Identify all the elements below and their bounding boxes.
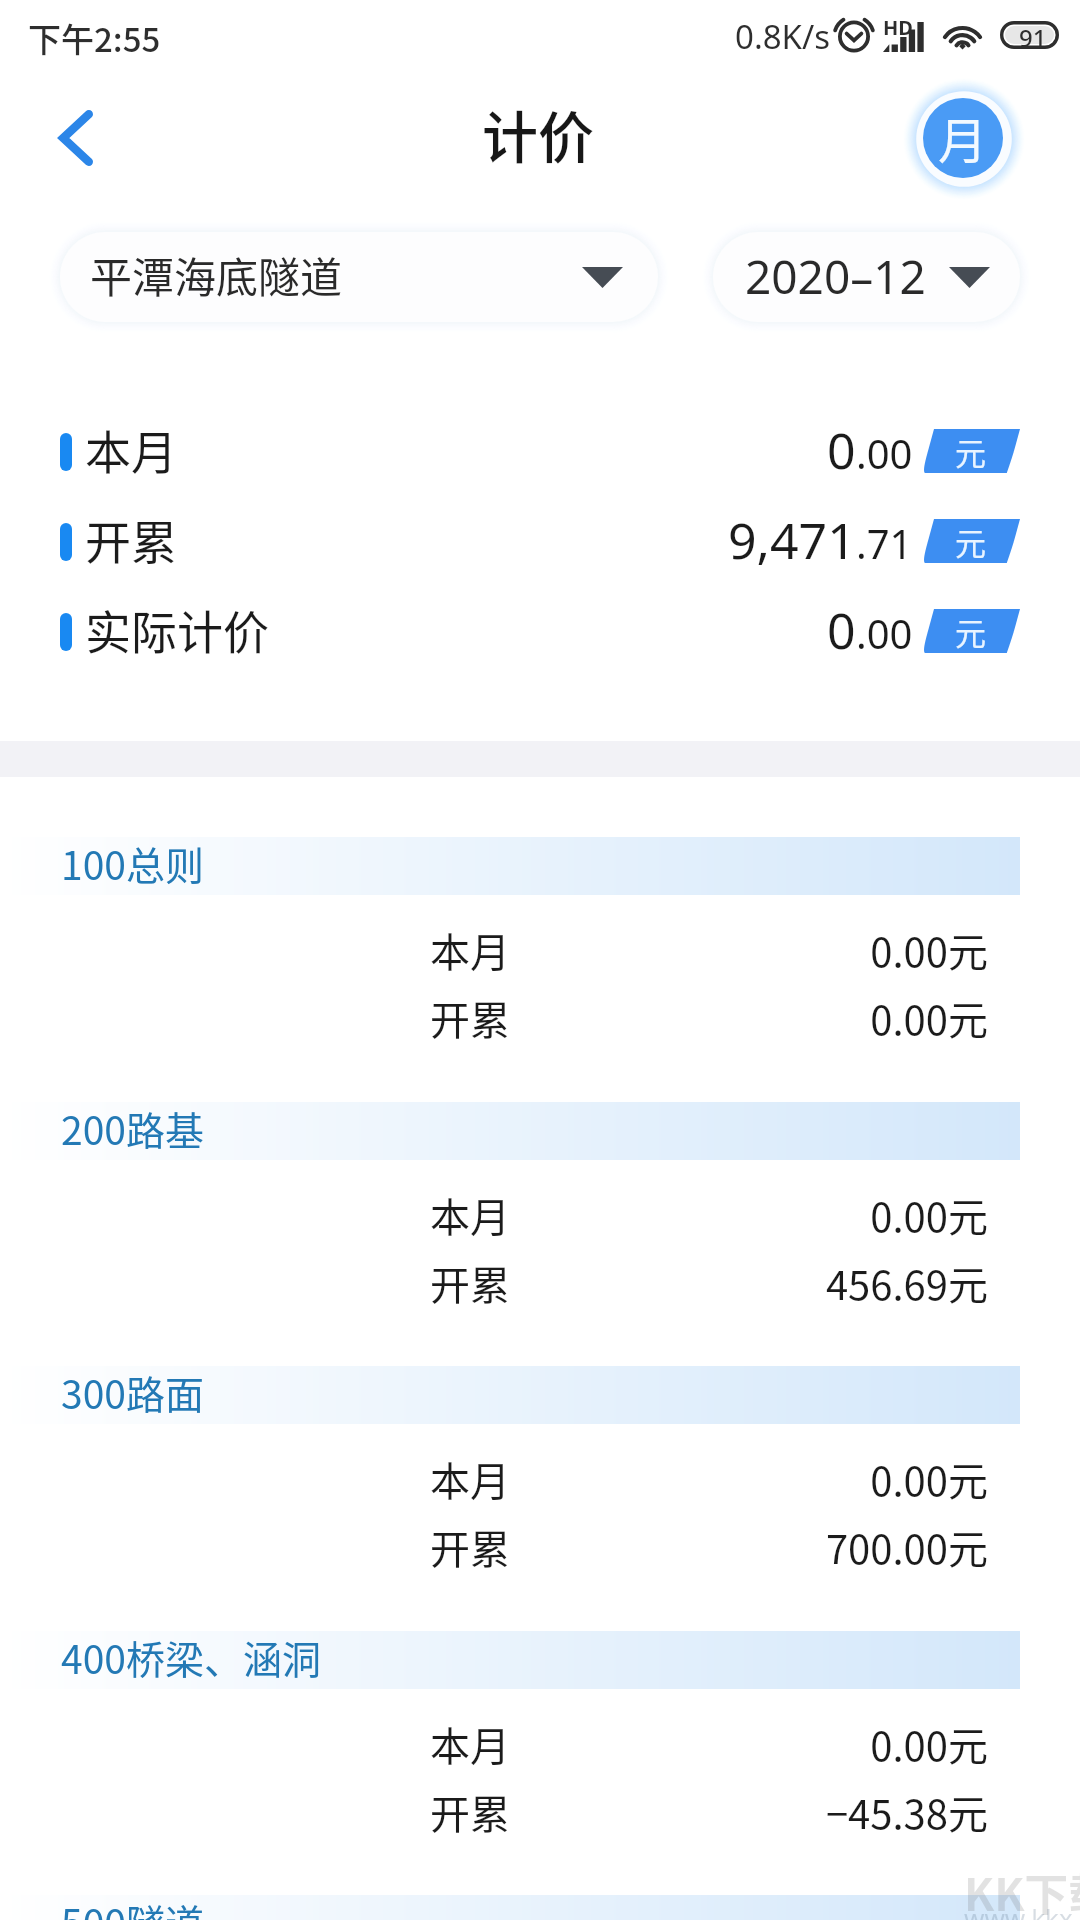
staticText: 元 [955,429,986,473]
button[interactable]: 开累 [0,509,1080,575]
button[interactable]: 平潭海底隧道 [60,232,658,322]
staticText: 400桥梁、涵洞 [61,1629,321,1685]
staticText: 0 [827,416,856,482]
button[interactable]: 本月 [0,921,1080,975]
button[interactable]: 本月 [0,1715,1080,1769]
button[interactable]: Back [38,100,114,176]
button[interactable]: 开累 [0,1783,1080,1837]
button[interactable]: 开累 [0,989,1080,1043]
staticText: 0.00元 [600,1450,988,1504]
staticText: 本月 [430,1450,510,1504]
staticText: 本月 [85,416,177,482]
staticText: HD [883,14,913,41]
button[interactable]: 500隧道 [0,1895,1020,1920]
staticText: 0.00元 [600,921,988,975]
staticText: 开累 [430,1783,510,1837]
staticText: 0 [827,596,856,662]
staticText: www.kkx.net [964,1900,1080,1920]
staticText: 0.8K/s [735,14,831,59]
staticText: 月 [938,102,988,173]
staticText: 300路面 [61,1364,204,1420]
button[interactable]: 200路基 [0,1102,1020,1160]
staticText: 下午2:55 [28,14,161,62]
staticText: 实际计价 [85,596,269,662]
button[interactable]: 开累 [0,1254,1080,1308]
staticText: .00 [856,606,913,660]
staticText: 2020–12 [745,245,926,308]
staticText: .71 [856,516,913,570]
staticText: 元 [955,609,986,653]
staticText: 本月 [430,921,510,975]
button[interactable]: 400桥梁、涵洞 [0,1631,1020,1689]
staticText: 计价 [482,93,594,174]
button[interactable]: 2020–12 [713,232,1020,322]
button[interactable]: 开累 [0,1518,1080,1572]
staticText: 本月 [430,1186,510,1240]
staticText: 0.00元 [600,989,988,1043]
button[interactable]: 100总则 [0,837,1020,895]
staticText: .00 [856,426,913,480]
staticText: 100总则 [61,835,204,891]
staticText: 元 [955,519,986,563]
button[interactable]: 实际计价 [0,599,1080,665]
staticText: 0.00元 [600,1186,988,1240]
staticText: KK下载 [964,1860,1080,1920]
button[interactable]: 本月 [0,419,1080,485]
staticText: 0.00元 [600,1715,988,1769]
staticText: 456.69元 [600,1254,988,1308]
staticText: 91 [1019,21,1047,49]
staticText: 9,471 [728,506,856,572]
staticText: 开累 [430,1254,510,1308]
staticText: 开累 [85,506,177,572]
button[interactable]: 本月 [0,1450,1080,1504]
staticText: 700.00元 [600,1518,988,1572]
button[interactable]: 300路面 [0,1366,1020,1424]
staticText: 开累 [430,989,510,1043]
staticText: 平潭海底隧道 [90,244,343,305]
staticText: 本月 [430,1715,510,1769]
button[interactable]: 月 [923,98,1003,178]
button[interactable]: 本月 [0,1186,1080,1240]
staticText: 500隧道 [61,1893,204,1920]
staticText: 200路基 [61,1100,204,1156]
staticText: 开累 [430,1518,510,1572]
staticText: −45.38元 [600,1783,988,1837]
